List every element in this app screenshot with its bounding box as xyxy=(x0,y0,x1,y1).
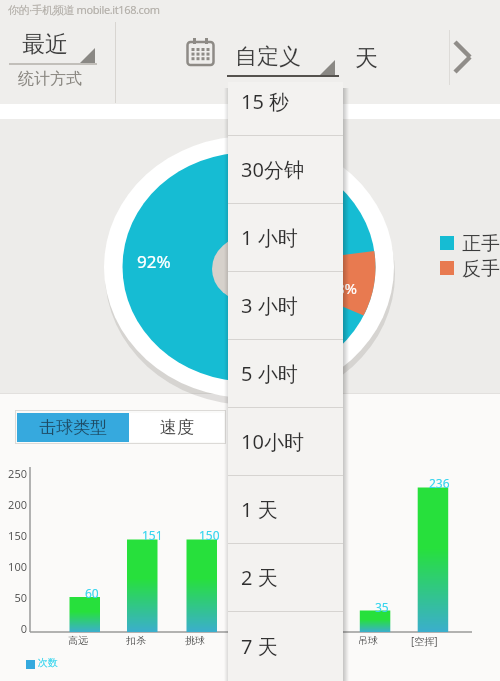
button[interactable]: 速度 xyxy=(129,413,224,442)
staticText: 7 天 xyxy=(241,633,278,660)
staticText: 反手 xyxy=(462,257,500,281)
staticText: 高远 xyxy=(68,634,88,647)
staticText: 统计方式 xyxy=(18,69,82,89)
staticText: 0 xyxy=(20,621,27,636)
staticText: 次数 xyxy=(38,656,58,669)
staticText: 150 xyxy=(199,527,220,543)
staticText: 250 xyxy=(8,466,27,481)
staticText: 30分钟 xyxy=(241,156,304,183)
staticText: 1 小时 xyxy=(241,224,298,251)
button[interactable]: 5 小时 xyxy=(228,340,343,407)
staticText: 挑球 xyxy=(185,634,205,647)
staticText: 35 xyxy=(375,599,389,615)
staticText: 2 天 xyxy=(241,564,278,591)
button[interactable]: 最近 xyxy=(0,20,110,104)
button[interactable]: 3 小时 xyxy=(228,272,343,339)
staticText: 100 xyxy=(8,559,27,574)
staticText: 236 xyxy=(429,475,450,491)
staticText: [空挥] xyxy=(411,634,438,648)
button[interactable]: 7 天 xyxy=(228,612,343,681)
button[interactable]: 10小时 xyxy=(228,408,343,475)
staticText: 150 xyxy=(8,528,27,543)
staticText: 200 xyxy=(8,497,27,512)
button[interactable]: 击球类型 xyxy=(17,413,129,442)
button[interactable]: 2 天 xyxy=(228,544,343,611)
button[interactable]: 自定义 xyxy=(225,35,340,80)
staticText: 5 小时 xyxy=(241,360,298,387)
button[interactable] xyxy=(443,37,485,77)
staticText: 击球类型 xyxy=(39,417,107,438)
staticText: 速度 xyxy=(160,417,194,438)
button[interactable]: 30分钟 xyxy=(228,136,343,203)
button[interactable]: 1 小时 xyxy=(228,204,343,271)
staticText: 吊球 xyxy=(358,634,378,647)
staticText: 你的·手机频道 mobile.it168.com xyxy=(8,2,160,17)
staticText: 3 小时 xyxy=(241,292,298,319)
staticText: 最近 xyxy=(22,30,68,59)
button[interactable] xyxy=(186,38,215,67)
button[interactable]: 1 天 xyxy=(228,476,343,543)
staticText: 正手 xyxy=(462,232,500,256)
staticText: 50 xyxy=(14,590,27,605)
staticText: 1 天 xyxy=(241,496,278,523)
button[interactable]: 15 秒 xyxy=(228,82,343,135)
staticText: 天 xyxy=(355,44,378,73)
staticText: 8% xyxy=(336,278,358,298)
staticText: 15 秒 xyxy=(241,88,290,115)
staticText: 151 xyxy=(142,527,163,543)
staticText: 60 xyxy=(85,585,99,601)
staticText: 92% xyxy=(137,250,171,273)
staticText: 扣杀 xyxy=(126,634,146,647)
staticText: 10小时 xyxy=(241,428,304,455)
staticText: 自定义 xyxy=(235,43,301,71)
